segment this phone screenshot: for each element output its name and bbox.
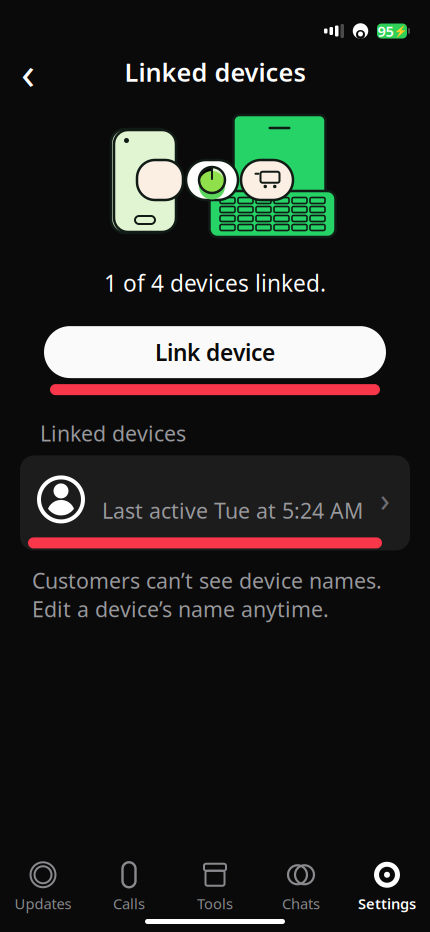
staticText: 1 of 4 devices linked. <box>104 268 326 298</box>
button[interactable]: Settings <box>344 859 430 915</box>
button[interactable]: Last active Tue at 5:24 AM <box>20 455 410 550</box>
staticText: Tools <box>197 894 233 913</box>
staticText: › <box>380 478 390 521</box>
staticText: 95 <box>377 21 393 41</box>
staticText: Customers can’t see device names. Edit a… <box>32 566 382 623</box>
button[interactable]: Tools <box>172 859 258 915</box>
button[interactable]: Link device <box>44 326 386 378</box>
staticText: Linked devices <box>124 55 305 89</box>
staticText: ⚡ <box>393 25 406 37</box>
staticText: Chats <box>282 894 320 913</box>
staticText: Link device <box>155 337 275 367</box>
button[interactable]: Back <box>6 50 50 94</box>
button[interactable]: Calls <box>86 859 172 915</box>
staticText: Linked devices <box>40 419 186 447</box>
staticText: Calls <box>113 894 145 913</box>
button[interactable]: Chats <box>258 859 344 915</box>
staticText: Last active Tue at 5:24 AM <box>102 496 363 525</box>
staticText: Updates <box>14 894 71 913</box>
staticText: ‹ <box>21 42 35 102</box>
staticText: Settings <box>358 894 416 913</box>
button[interactable]: Updates <box>0 859 86 915</box>
